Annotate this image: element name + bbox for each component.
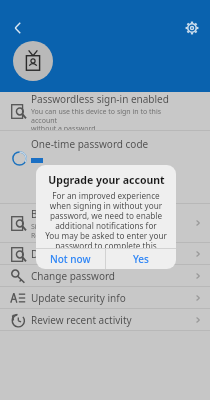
staticText: Passwordless sign-in enabled — [31, 92, 169, 106]
button[interactable]: Not now — [36, 249, 105, 269]
staticText: Upgrade your account — [48, 173, 165, 187]
button[interactable]: Account avatar — [13, 41, 53, 81]
staticText: Not now — [50, 252, 91, 266]
staticText: Blocked sign-in — [31, 207, 103, 221]
staticText: For an improved experience when signing … — [43, 190, 169, 248]
button[interactable]: Back — [4, 14, 32, 42]
button[interactable]: Review recent activity — [0, 309, 210, 330]
staticText: Review recent activity — [31, 313, 132, 327]
button[interactable]: Settings — [178, 14, 206, 42]
staticText: Change password — [31, 269, 116, 283]
button[interactable]: Passwordless sign-in enabled — [0, 92, 210, 130]
button[interactable]: Device details — [0, 243, 210, 264]
button[interactable]: One-time password code — [0, 131, 210, 203]
staticText: One-time password code — [31, 137, 149, 151]
staticText: You can use this device to sign in to th… — [31, 107, 181, 130]
button[interactable]: Update security info — [0, 287, 210, 308]
staticText: Yes — [133, 252, 149, 266]
button[interactable]: Blocked sign-in — [0, 204, 210, 242]
button[interactable]: Change password — [0, 265, 210, 286]
button[interactable]: Yes — [106, 249, 176, 269]
staticText: Sign-in was blocked for this account Rev… — [31, 222, 149, 240]
staticText: Update security info — [31, 291, 126, 305]
staticText: Device details — [31, 247, 96, 261]
